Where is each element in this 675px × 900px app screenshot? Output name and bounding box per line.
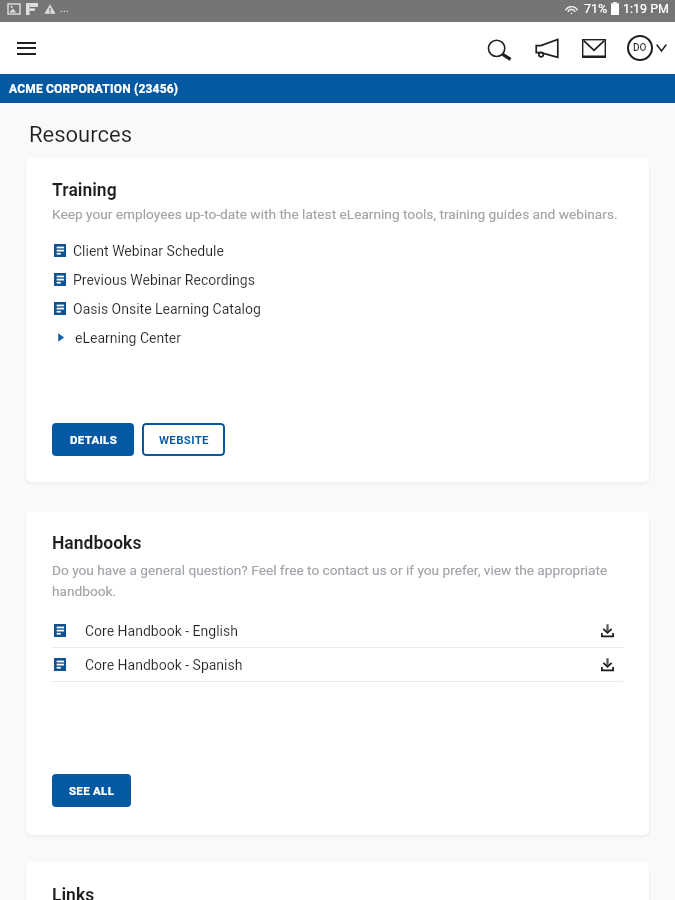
button[interactable]: Announcements (525, 27, 568, 69)
staticText: Handbooks (52, 533, 142, 554)
staticText: ... (60, 2, 69, 15)
button[interactable]: Core Handbook - English (52, 614, 623, 647)
staticText: Previous Webinar Recordings (73, 272, 255, 288)
staticText: Resources (29, 122, 133, 148)
staticText: Core Handbook - English (85, 623, 238, 639)
staticText: Training (52, 180, 117, 201)
button[interactable]: Client Webinar Schedule (52, 236, 629, 265)
staticText: Keep your employees up-to-date with the … (52, 206, 618, 222)
staticText: Client Webinar Schedule (73, 243, 224, 259)
staticText: WEBSITE (159, 433, 209, 446)
button[interactable]: eLearning Center (52, 323, 629, 352)
button[interactable]: Search (477, 27, 521, 71)
staticText: Links (52, 885, 95, 900)
staticText: 71% (584, 1, 608, 16)
staticText: eLearning Center (75, 330, 181, 346)
staticText: ACME CORPORATION (23456) (9, 82, 179, 96)
staticText: Oasis Onsite Learning Catalog (73, 301, 261, 317)
button[interactable]: Oasis Onsite Learning Catalog (52, 294, 629, 323)
staticText: SEE ALL (69, 784, 115, 797)
button[interactable]: Open navigation menu (5, 29, 48, 67)
button[interactable]: DETAILS (52, 423, 134, 456)
staticText: Core Handbook - Spanish (85, 657, 243, 673)
staticText: 1:19 PM (623, 1, 670, 16)
button[interactable]: Mail (572, 27, 615, 69)
button[interactable]: Download Core Handbook - English (597, 620, 623, 641)
staticText: Do you have a general question? Feel fre… (52, 562, 623, 599)
button[interactable]: Account menu (622, 30, 670, 66)
button[interactable]: Core Handbook - Spanish (52, 648, 623, 681)
button[interactable]: WEBSITE (142, 423, 225, 456)
button[interactable]: Previous Webinar Recordings (52, 265, 629, 294)
staticText: DETAILS (70, 433, 117, 446)
staticText: DO (633, 42, 647, 54)
button[interactable]: SEE ALL (52, 774, 131, 807)
button[interactable]: Download Core Handbook - Spanish (597, 654, 623, 675)
